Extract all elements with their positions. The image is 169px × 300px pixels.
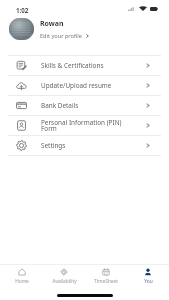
staticText: You bbox=[144, 278, 153, 285]
staticText: Home bbox=[15, 278, 29, 285]
staticText: Edit your profile bbox=[40, 32, 82, 40]
button[interactable]: Update/Upload resume bbox=[0, 76, 169, 95]
button[interactable]: You bbox=[127, 266, 169, 287]
staticText: 1:02 bbox=[16, 6, 29, 14]
staticText: Personal Information (PIN) Form bbox=[41, 118, 146, 133]
button[interactable]: Bank Details bbox=[0, 96, 169, 115]
button[interactable]: Availability bbox=[43, 266, 85, 287]
button[interactable]: Personal Information (PIN) Form bbox=[0, 116, 169, 135]
staticText: Availability bbox=[52, 278, 77, 285]
staticText: TimeSheet bbox=[94, 278, 118, 285]
button[interactable]: Skills & Certifications bbox=[0, 56, 169, 75]
button[interactable]: Home bbox=[0, 266, 43, 287]
button[interactable]: TimeSheet bbox=[85, 266, 127, 287]
staticText: Rowan bbox=[40, 19, 64, 29]
staticText: Bank Details bbox=[41, 101, 146, 110]
button[interactable]: Settings bbox=[0, 136, 169, 155]
button[interactable]: Rowan bbox=[0, 14, 169, 44]
staticText: Settings bbox=[41, 141, 146, 150]
staticText: Update/Upload resume bbox=[41, 81, 146, 90]
staticText: Skills & Certifications bbox=[41, 61, 146, 70]
